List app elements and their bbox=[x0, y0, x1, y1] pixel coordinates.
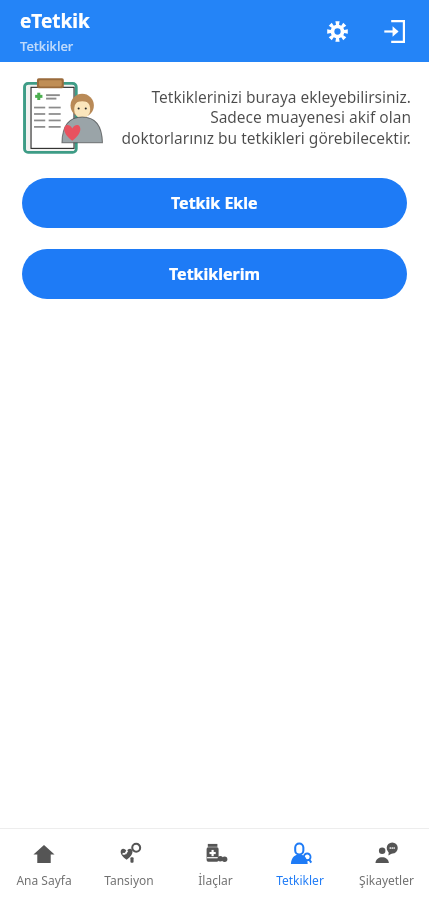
staticText: Tetkik Ekle bbox=[171, 192, 258, 214]
staticText: Şikayetler bbox=[359, 872, 414, 888]
button[interactable]: Settings bbox=[315, 9, 359, 53]
staticText: İlaçlar bbox=[198, 872, 233, 888]
staticText: Tetkikler bbox=[276, 872, 324, 888]
staticText: Tansiyon bbox=[104, 872, 154, 888]
button[interactable]: Şikayetler bbox=[344, 829, 428, 900]
button[interactable]: Tetkik Ekle bbox=[22, 178, 407, 228]
button[interactable]: Tetkiklerim bbox=[22, 249, 407, 299]
staticText: Tetkikler bbox=[20, 37, 74, 55]
button[interactable]: Tansiyon bbox=[87, 829, 171, 900]
staticText: Ana Sayfa bbox=[16, 872, 72, 888]
staticText: eTetkik bbox=[20, 8, 90, 34]
staticText: Tetkiklerinizi buraya ekleyebilirsiniz. … bbox=[118, 86, 411, 149]
staticText: Tetkiklerim bbox=[169, 263, 261, 285]
button[interactable]: İlaçlar bbox=[173, 829, 257, 900]
button[interactable]: Ana Sayfa bbox=[2, 829, 86, 900]
button[interactable]: Tetkikler bbox=[258, 829, 342, 900]
button[interactable]: Logout bbox=[371, 9, 415, 53]
